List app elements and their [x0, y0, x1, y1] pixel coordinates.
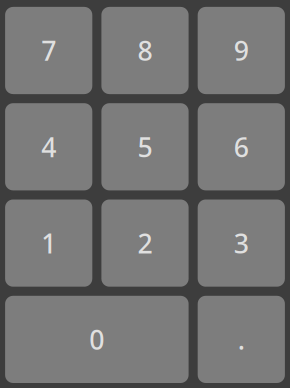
staticText: 9 — [234, 33, 249, 68]
staticText: 8 — [137, 33, 152, 68]
button[interactable]: Decimal point — [198, 296, 285, 383]
button[interactable]: Five — [101, 103, 189, 190]
staticText: 4 — [41, 129, 56, 164]
button[interactable]: Three — [198, 199, 285, 287]
staticText: 0 — [89, 322, 104, 357]
button[interactable]: Seven — [5, 7, 92, 94]
staticText: 3 — [234, 225, 249, 261]
button[interactable]: Six — [198, 103, 285, 190]
button[interactable]: Four — [5, 103, 92, 190]
staticText: 2 — [137, 225, 152, 261]
button[interactable]: One — [5, 199, 92, 287]
button[interactable]: Zero — [5, 296, 189, 383]
button[interactable]: Nine — [198, 7, 285, 94]
staticText: 6 — [234, 129, 249, 164]
button[interactable]: Eight — [101, 7, 189, 94]
staticText: 7 — [41, 33, 56, 68]
button[interactable]: Two — [101, 199, 189, 287]
staticText: 5 — [137, 129, 152, 164]
staticText: 1 — [41, 225, 56, 261]
staticText: . — [238, 322, 245, 357]
